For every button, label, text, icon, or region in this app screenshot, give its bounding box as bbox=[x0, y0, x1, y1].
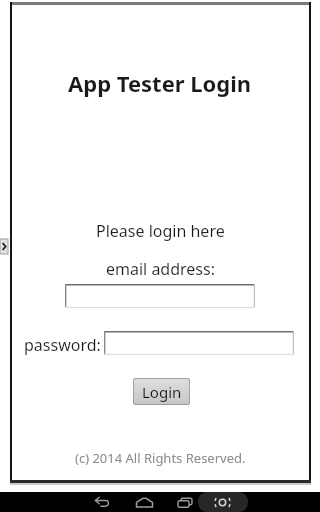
button[interactable] bbox=[104, 331, 294, 355]
staticText: email address: bbox=[106, 258, 215, 280]
staticText: (c) 2014 All Rights Reserved. bbox=[75, 449, 246, 467]
button[interactable] bbox=[175, 492, 197, 512]
button[interactable] bbox=[210, 492, 236, 512]
staticText: Please login here bbox=[96, 220, 225, 242]
staticText: Login bbox=[142, 382, 182, 402]
button[interactable] bbox=[65, 284, 255, 308]
button[interactable] bbox=[0, 239, 8, 254]
staticText: App Tester Login bbox=[68, 68, 252, 98]
button[interactable] bbox=[90, 492, 116, 512]
button[interactable] bbox=[132, 492, 158, 512]
button[interactable]: Login bbox=[133, 378, 190, 405]
staticText: password: bbox=[24, 334, 101, 356]
